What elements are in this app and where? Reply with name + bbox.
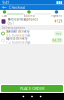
staticText: 3-5 business days [6, 34, 30, 37]
button[interactable]: Express delivery [0, 37, 64, 44]
staticText: Cart [2, 14, 7, 18]
staticText: PLACE ORDER [20, 86, 44, 91]
staticText: ▮▮▮ [56, 0, 62, 4]
staticText: Checkout [8, 5, 24, 10]
staticText: 9:41 [2, 0, 9, 5]
button[interactable]: Standard delivery [0, 30, 64, 37]
staticText: ← [2, 4, 6, 10]
staticText: Address [23, 14, 34, 18]
staticText: Qty 1 [7, 22, 14, 25]
staticText: Wireless Headphones [7, 18, 37, 21]
staticText: $129 [54, 20, 62, 23]
staticText: Payment [51, 14, 62, 18]
staticText: $4.99 [52, 39, 61, 42]
button[interactable]: Back [1, 4, 6, 10]
staticText: Express delivery [6, 37, 27, 40]
staticText: Free [55, 32, 61, 35]
button[interactable]: PLACE ORDER [1, 85, 63, 92]
staticText: Delivery options [1, 26, 24, 30]
staticText: Standard delivery [6, 30, 29, 33]
staticText: 1-2 business days [6, 41, 30, 44]
